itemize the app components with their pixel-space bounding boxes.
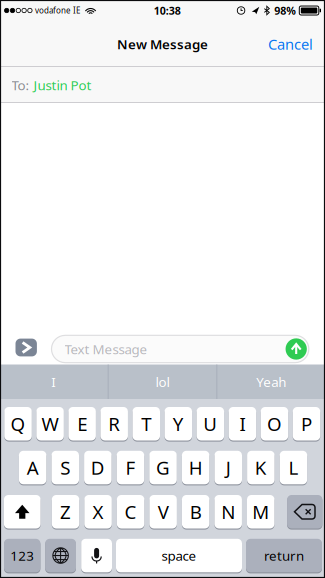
staticText: T — [141, 411, 151, 436]
staticText: 123 — [10, 547, 34, 564]
staticText: I — [51, 373, 56, 391]
button[interactable]: G — [149, 450, 177, 485]
button[interactable]: P — [293, 406, 320, 441]
button[interactable]: Cancel — [254, 22, 325, 66]
button[interactable]: Q — [4, 406, 32, 441]
button[interactable]: return — [246, 538, 322, 573]
button[interactable]: U — [197, 406, 224, 441]
staticText: E — [77, 411, 87, 436]
button[interactable]: S — [51, 450, 79, 485]
button[interactable]: Y — [165, 406, 192, 441]
button[interactable]: W — [36, 406, 64, 441]
staticText: V — [158, 499, 169, 524]
staticText: New Message — [117, 35, 208, 53]
staticText: R — [108, 411, 120, 436]
button[interactable]: Next keyboard — [45, 538, 76, 573]
staticText: L — [288, 455, 298, 480]
button[interactable]: M — [247, 494, 274, 529]
button[interactable]: space — [116, 538, 242, 573]
staticText: D — [91, 455, 105, 480]
button[interactable]: R — [100, 406, 128, 441]
button[interactable]: I — [0, 364, 108, 399]
staticText: Justin Pot — [33, 76, 91, 94]
staticText: space — [161, 547, 196, 564]
staticText: X — [93, 499, 104, 524]
button[interactable]: C — [117, 494, 144, 529]
staticText: To: — [11, 76, 29, 94]
staticText: S — [60, 455, 70, 480]
staticText: A — [27, 455, 39, 480]
button[interactable]: F — [117, 450, 144, 485]
button[interactable]: L — [280, 450, 307, 485]
staticText: Y — [173, 411, 184, 436]
staticText: J — [226, 455, 231, 480]
staticText: O — [267, 411, 282, 436]
staticText: Yeah — [256, 373, 286, 391]
staticText: return — [264, 547, 304, 564]
staticText: F — [125, 455, 135, 480]
staticText: H — [189, 455, 203, 480]
staticText: Z — [60, 499, 71, 524]
staticText: C — [125, 499, 137, 524]
button[interactable]: I — [229, 406, 256, 441]
staticText: G — [156, 455, 170, 480]
button[interactable]: Yeah — [217, 364, 325, 399]
staticText: vodafone IE — [35, 5, 80, 16]
button[interactable]: lol — [109, 364, 216, 399]
button[interactable]: V — [149, 494, 177, 529]
button[interactable]: H — [182, 450, 209, 485]
staticText: K — [255, 455, 267, 480]
button[interactable]: Z — [52, 494, 79, 529]
button[interactable]: Send — [285, 337, 308, 360]
button[interactable]: B — [182, 494, 209, 529]
staticText: Q — [11, 411, 26, 436]
staticText: P — [301, 411, 312, 436]
staticText: U — [203, 411, 217, 436]
button[interactable]: J — [214, 450, 242, 485]
staticText: Cancel — [268, 34, 313, 54]
button[interactable]: A — [19, 450, 46, 485]
staticText: Text Message — [64, 340, 147, 358]
button[interactable]: D — [84, 450, 112, 485]
button[interactable]: 123 — [4, 538, 40, 573]
button[interactable]: Dictate — [81, 538, 112, 573]
button[interactable]: T — [132, 406, 160, 441]
button[interactable]: N — [214, 494, 242, 529]
staticText: 10:38 — [154, 3, 181, 18]
button[interactable]: Delete — [287, 494, 322, 529]
button[interactable]: O — [261, 406, 288, 441]
staticText: B — [190, 499, 202, 524]
staticText: lol — [155, 373, 169, 391]
button[interactable]: E — [68, 406, 96, 441]
staticText: N — [221, 499, 235, 524]
button[interactable]: K — [247, 450, 275, 485]
button[interactable]: Apps — [15, 339, 37, 356]
staticText: W — [42, 411, 59, 436]
button[interactable]: X — [84, 494, 112, 529]
staticText: I — [239, 411, 245, 436]
staticText: M — [252, 499, 269, 524]
button[interactable]: Shift — [4, 494, 41, 529]
staticText: 98% — [274, 3, 296, 18]
